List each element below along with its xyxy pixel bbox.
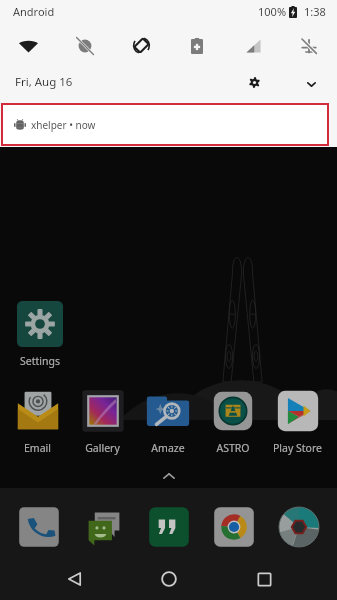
button[interactable]: Wi-Fi [0,25,57,66]
button[interactable]: Chrome [201,494,266,559]
button[interactable]: Camera [266,494,331,559]
staticText: ASTRO [216,441,250,455]
button[interactable]: Mobile signal [225,25,281,66]
button[interactable]: Settings [241,69,267,95]
button[interactable]: Airplane mode [281,25,337,66]
staticText: xhelper • now [31,118,96,132]
button[interactable]: All apps [0,469,337,483]
button[interactable]: Collapse [298,71,324,97]
button[interactable]: Hangouts [136,494,201,559]
button[interactable]: Auto rotate [113,25,169,66]
staticText: 100% [258,4,287,19]
button[interactable]: Gallery [70,387,135,455]
button[interactable]: Recents [242,558,286,600]
button[interactable]: Email [5,387,70,455]
staticText: Amaze [151,441,185,455]
button[interactable]: xhelper • now [1,103,329,146]
button[interactable]: Home [147,558,191,600]
staticText: 1:38 [304,4,326,19]
staticText: Play Store [273,441,322,455]
button[interactable]: Do not disturb [57,25,113,66]
button[interactable]: Back [52,558,96,600]
staticText: Gallery [85,441,120,455]
button[interactable]: Battery saver [169,25,225,66]
button[interactable]: Settings [7,300,72,368]
staticText: Settings [20,354,60,368]
button[interactable]: ASTRO [200,387,265,455]
staticText: Android [13,4,55,19]
button[interactable]: Play Store [265,387,330,455]
staticText: Fri, Aug 16 [15,74,73,90]
staticText: Email [24,441,51,455]
button[interactable]: Phone [6,494,71,559]
button[interactable]: Amaze [135,387,200,455]
button[interactable]: Messaging [71,494,136,559]
